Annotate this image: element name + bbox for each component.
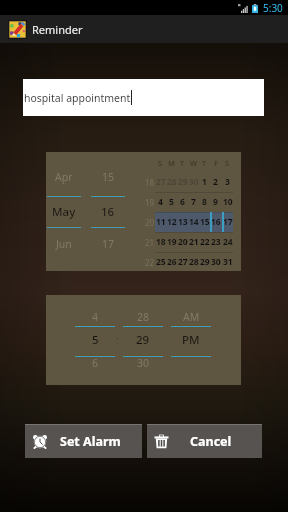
staticText: 5 [92, 332, 99, 348]
staticText: 29 [136, 332, 150, 348]
staticText: 30 [137, 356, 150, 370]
staticText: Apr [55, 170, 73, 184]
staticText: 23 [211, 236, 221, 248]
staticText: Jun [56, 237, 72, 251]
staticText: 30 [211, 256, 221, 268]
staticText: AM [183, 310, 200, 324]
button[interactable]: Apr [47, 152, 81, 271]
staticText: W [190, 158, 198, 168]
staticText: hospital appointment [24, 91, 131, 105]
staticText: 29 [178, 176, 188, 188]
staticText: 22 [200, 236, 210, 248]
staticText: 19 [145, 197, 155, 208]
staticText: 17 [102, 237, 115, 251]
staticText: 7 [191, 196, 196, 208]
other: Battery [252, 4, 258, 13]
staticText: 5:30 [263, 1, 283, 15]
staticText: Reminder [32, 22, 83, 37]
staticText: 2 [213, 176, 218, 188]
staticText: 11 [156, 216, 166, 228]
staticText: 5 [169, 196, 174, 208]
staticText: 27 [156, 176, 166, 188]
staticText: 21 [189, 236, 199, 248]
staticText: 16 [211, 216, 221, 228]
staticText: 8 [202, 196, 207, 208]
staticText: Cancel [190, 433, 232, 450]
staticText: 30 [189, 176, 199, 188]
button[interactable]: Alarm [25, 424, 142, 458]
staticText: 22 [145, 257, 155, 268]
staticText: 15 [102, 170, 115, 184]
staticText: 4 [92, 310, 99, 324]
staticText: 3 [225, 176, 230, 188]
button[interactable]: AM [171, 295, 211, 385]
staticText: S [225, 158, 230, 168]
staticText: 6 [180, 196, 185, 208]
staticText: 13 [178, 216, 188, 228]
staticText: 14 [189, 216, 199, 228]
staticText: 1 [202, 176, 207, 188]
staticText: 20 [178, 236, 188, 248]
staticText: 10 [223, 196, 233, 208]
staticText: 21 [145, 237, 155, 248]
staticText: F [214, 158, 218, 168]
staticText: 28 [137, 310, 150, 324]
staticText: 16 [101, 204, 115, 220]
staticText: Set Alarm [60, 433, 121, 450]
staticText: M [168, 158, 175, 168]
staticText: 17 [223, 216, 233, 228]
button[interactable]: 28 [123, 295, 163, 385]
button[interactable]: 4 [75, 295, 115, 385]
other: Reminder [8, 20, 27, 39]
staticText: PM [182, 332, 200, 348]
staticText: 29 [200, 256, 210, 268]
staticText: 27 [178, 256, 188, 268]
staticText: 9 [213, 196, 218, 208]
staticText: 6 [92, 356, 99, 370]
staticText: T [180, 158, 185, 168]
staticText: May [52, 204, 76, 220]
button[interactable]: Delete [147, 424, 262, 458]
staticText: 28 [189, 256, 199, 268]
staticText: 18 [145, 177, 155, 188]
staticText: 15 [200, 216, 210, 228]
staticText: 25 [156, 256, 166, 268]
button[interactable]: 15 [91, 152, 125, 271]
staticText: 12 [167, 216, 177, 228]
staticText: 26 [167, 256, 177, 268]
staticText: 20 [145, 217, 155, 228]
staticText: 4 [158, 196, 163, 208]
other: Alarm [31, 432, 49, 450]
staticText: : [116, 333, 119, 347]
button[interactable]: S [145, 152, 241, 271]
other: Signal [238, 4, 248, 13]
staticText: 31 [223, 256, 233, 268]
staticText: 24 [223, 236, 233, 248]
staticText: 28 [167, 176, 177, 188]
staticText: T [202, 158, 207, 168]
other: Delete [153, 433, 170, 450]
staticText: 19 [167, 236, 177, 248]
staticText: 18 [156, 236, 166, 248]
staticText: S [158, 158, 163, 168]
button[interactable]: hospital appointment [23, 79, 264, 116]
